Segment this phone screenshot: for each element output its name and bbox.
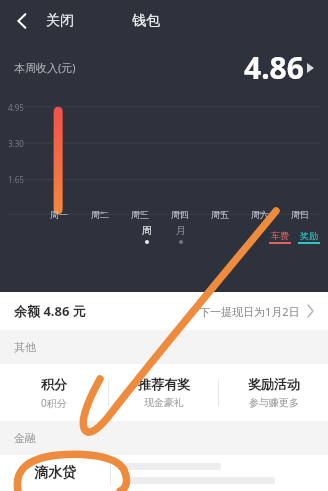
button[interactable]: 关闭 xyxy=(44,12,76,30)
staticText: 周六 xyxy=(251,209,269,220)
button[interactable]: 返回 xyxy=(0,0,44,42)
staticText: 1.65 xyxy=(8,174,24,185)
staticText: 钱包 xyxy=(132,12,160,30)
button[interactable]: 滴水贷 xyxy=(0,455,328,491)
staticText: 周五 xyxy=(211,209,229,220)
staticText: 周一 xyxy=(50,209,68,220)
staticText: 余额 4.86 元 xyxy=(14,302,86,320)
staticText: 下一提现日为1月2日 xyxy=(199,304,300,319)
staticText: 本周收入(元) xyxy=(14,60,76,75)
button[interactable]: 奖励 xyxy=(298,230,320,244)
staticText: 现金豪礼 xyxy=(144,396,184,409)
staticText: 0积分 xyxy=(41,396,67,410)
button[interactable]: 积分 xyxy=(0,376,108,410)
staticText: 奖励 xyxy=(300,230,318,241)
staticText: 滴水贷 xyxy=(34,464,76,482)
staticText: 周四 xyxy=(171,209,189,220)
staticText: 周 xyxy=(142,224,152,237)
staticText: 月 xyxy=(176,224,186,237)
staticText: 3.30 xyxy=(8,138,24,149)
staticText: 推荐有奖 xyxy=(138,376,190,392)
button[interactable]: 推荐有奖 xyxy=(109,376,218,409)
staticText: 周三 xyxy=(131,209,149,220)
staticText: 车费 xyxy=(271,230,289,241)
button[interactable]: 月 xyxy=(171,224,191,244)
staticText: 金融 xyxy=(14,431,36,445)
staticText: 关闭 xyxy=(46,12,74,30)
staticText: 4.86 xyxy=(244,47,304,88)
button[interactable]: 车费 xyxy=(269,230,291,244)
button[interactable]: 4.86 xyxy=(244,47,314,88)
staticText: 参与赚更多 xyxy=(249,396,299,409)
button[interactable]: 余额 4.86 元 xyxy=(0,292,328,330)
staticText: 奖励活动 xyxy=(248,376,300,392)
staticText: 4.95 xyxy=(8,102,24,113)
staticText: 积分 xyxy=(41,376,67,392)
staticText: 其他 xyxy=(14,340,36,354)
staticText: 周二 xyxy=(91,209,109,220)
staticText: 周日 xyxy=(291,209,309,220)
button[interactable]: 奖励活动 xyxy=(219,376,328,409)
button[interactable]: 周 xyxy=(137,224,157,244)
